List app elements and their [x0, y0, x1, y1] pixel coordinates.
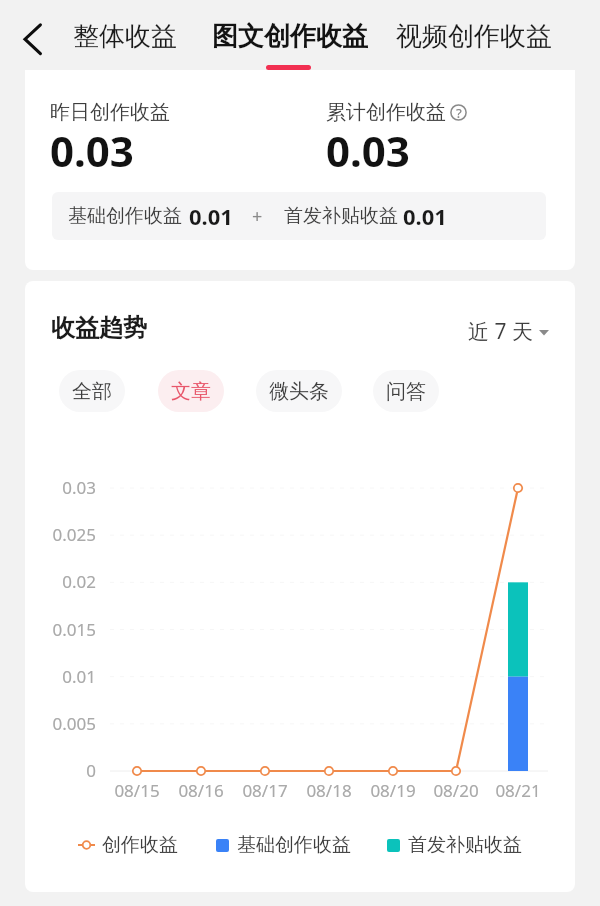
staticText: 累计创作收益: [326, 100, 446, 125]
staticText: 0.03: [50, 122, 134, 179]
staticText: 问答: [386, 379, 426, 404]
button[interactable]: 问答: [373, 370, 439, 412]
staticText: 近 7 天: [468, 317, 533, 346]
staticText: 08/18: [294, 779, 364, 802]
staticText: 0.015: [36, 618, 96, 641]
staticText: 0.005: [36, 712, 96, 735]
staticText: 08/17: [230, 779, 300, 802]
button[interactable]: 近 7 天: [468, 317, 549, 346]
staticText: 0.03: [326, 122, 410, 179]
staticText: ?: [456, 104, 462, 121]
staticText: 基础创作收益: [68, 204, 182, 228]
button[interactable]: 全部: [59, 370, 125, 412]
staticText: 微头条: [269, 379, 329, 404]
button[interactable]: 视频创作收益: [384, 15, 564, 57]
staticText: 08/20: [421, 779, 491, 802]
staticText: 创作收益: [102, 833, 178, 857]
staticText: 整体收益: [73, 20, 177, 53]
staticText: 文章: [171, 379, 211, 404]
staticText: 0: [36, 759, 96, 782]
staticText: 0.02: [36, 570, 96, 593]
staticText: 08/15: [102, 779, 172, 802]
button[interactable]: 整体收益: [61, 15, 189, 57]
staticText: 首发补贴收益: [284, 204, 398, 228]
staticText: 基础创作收益: [237, 833, 351, 857]
staticText: 图文创作收益: [212, 20, 368, 53]
staticText: 视频创作收益: [396, 20, 552, 53]
staticText: 昨日创作收益: [50, 100, 170, 125]
staticText: 08/21: [483, 779, 553, 802]
staticText: 收益趋势: [51, 313, 147, 343]
staticText: 08/19: [358, 779, 428, 802]
staticText: 全部: [72, 379, 112, 404]
staticText: +: [252, 204, 263, 229]
button[interactable]: 文章: [158, 370, 224, 412]
staticText: 0.01: [36, 665, 96, 688]
button[interactable]: Back: [12, 16, 58, 62]
staticText: 0.01: [403, 201, 447, 231]
button[interactable]: 微头条: [256, 370, 342, 412]
staticText: 08/16: [166, 779, 236, 802]
staticText: 0.025: [36, 523, 96, 546]
staticText: 0.01: [189, 201, 233, 231]
staticText: 0.03: [36, 476, 96, 499]
button[interactable]: 图文创作收益: [200, 15, 380, 57]
staticText: 首发补贴收益: [408, 833, 522, 857]
